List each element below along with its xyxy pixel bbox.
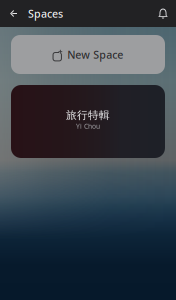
- button[interactable]: Back to Spaces: [0, 0, 75, 27]
- button[interactable]: Notifications: [145, 0, 176, 27]
- staticText: New Space: [67, 47, 123, 62]
- staticText: 旅行特輯: [66, 108, 110, 122]
- staticText: Spaces: [28, 6, 63, 21]
- button[interactable]: 旅行特輯: [11, 85, 165, 158]
- button[interactable]: New Space: [11, 35, 165, 74]
- staticText: Yi Chou: [76, 122, 100, 130]
